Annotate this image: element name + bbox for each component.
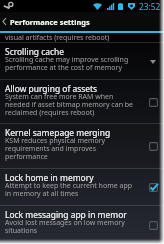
button[interactable]: Lock home in memory xyxy=(0,169,164,206)
staticText: Avoid lost messages on low memory situat… xyxy=(5,218,125,235)
staticText: System can free more RAM when needed if … xyxy=(5,92,134,117)
button[interactable]: Navigate up xyxy=(0,12,9,31)
staticText: visual artifacts (requires reboot) xyxy=(5,33,110,43)
staticText: Kernel samepage merging xyxy=(5,127,111,139)
staticText: 23:52 xyxy=(139,1,161,12)
staticText: Lock home in memory xyxy=(5,172,94,184)
staticText: Performance settings xyxy=(10,17,90,27)
button[interactable]: Scrolling cache xyxy=(0,43,164,80)
button[interactable]: Lock messaging app in memor xyxy=(0,206,164,244)
staticText: Scrolling cache may improve scrolling pe… xyxy=(5,55,129,72)
staticText: Lock messaging app in memor xyxy=(5,209,127,221)
staticText: Scrolling cache xyxy=(5,46,65,58)
staticText: KSM reduces physical memory requirements… xyxy=(5,136,106,161)
button[interactable]: Kernel samepage merging xyxy=(0,124,164,169)
button[interactable]: Allow purging of assets xyxy=(0,80,164,124)
staticText: Attempt to keep the current home app in … xyxy=(5,181,132,198)
staticText: Allow purging of assets xyxy=(5,83,98,95)
